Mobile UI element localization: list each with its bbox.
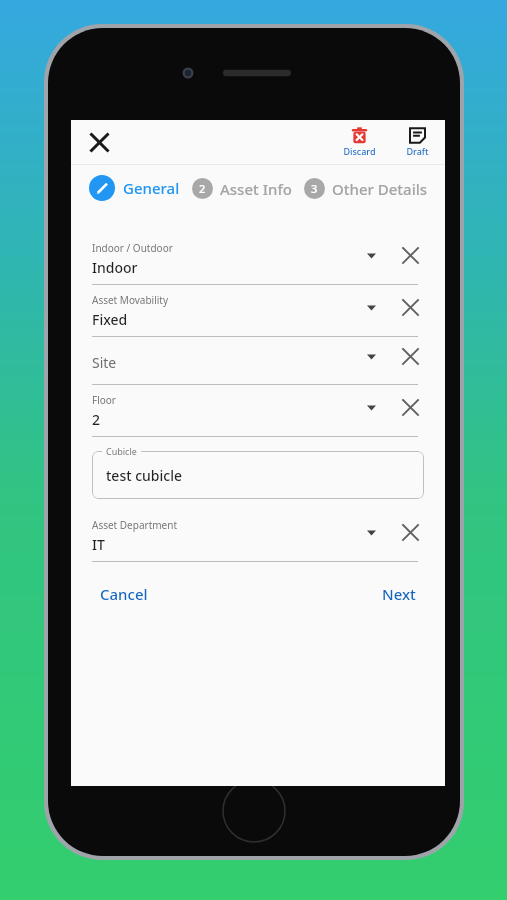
button[interactable]: Discard <box>337 125 381 159</box>
button[interactable]: Asset Department <box>92 510 424 562</box>
button[interactable]: Clear Asset Movability <box>396 293 424 321</box>
staticText: Site <box>92 353 117 372</box>
staticText: test cubicle <box>106 466 183 485</box>
staticText: Asset Info <box>220 179 292 199</box>
button[interactable]: Clear Site <box>396 342 424 370</box>
button[interactable]: Cancel <box>92 578 156 610</box>
staticText: 2 <box>92 410 101 429</box>
button[interactable]: Close <box>81 124 117 160</box>
staticText: Fixed <box>92 310 128 329</box>
staticText: Floor <box>92 393 116 407</box>
button[interactable]: Open Asset Movability dropdown <box>358 294 384 320</box>
button[interactable]: Asset Movability <box>92 285 424 337</box>
button[interactable]: Open Site dropdown <box>358 343 384 369</box>
button[interactable]: Clear Asset Department <box>396 518 424 546</box>
button[interactable]: Floor <box>92 385 424 437</box>
button[interactable]: Clear Indoor / Outdoor <box>396 241 424 269</box>
staticText: Indoor <box>92 258 138 277</box>
staticText: 3 <box>311 181 318 196</box>
button[interactable]: Site <box>92 337 424 385</box>
button[interactable]: General <box>89 175 180 201</box>
staticText: Other Details <box>332 179 428 199</box>
button[interactable]: 3 <box>304 178 428 199</box>
button[interactable]: Open Asset Department dropdown <box>358 519 384 545</box>
staticText: Asset Department <box>92 518 178 532</box>
staticText: IT <box>92 535 105 554</box>
staticText: Cancel <box>100 584 148 604</box>
button[interactable]: test cubicle <box>92 451 424 499</box>
button[interactable]: Clear Floor <box>396 393 424 421</box>
button[interactable]: Indoor / Outdoor <box>92 233 424 285</box>
button[interactable]: Draft <box>395 125 439 159</box>
staticText: General <box>123 178 180 198</box>
staticText: 2 <box>199 181 206 196</box>
button[interactable]: Open Indoor / Outdoor dropdown <box>358 242 384 268</box>
staticText: Draft <box>406 145 429 157</box>
staticText: Discard <box>343 145 376 157</box>
staticText: Cubicle <box>106 445 137 457</box>
button[interactable]: Open Floor dropdown <box>358 394 384 420</box>
staticText: Next <box>382 584 416 604</box>
staticText: Asset Movability <box>92 293 169 307</box>
button[interactable]: Next <box>374 578 424 610</box>
button[interactable]: 2 <box>192 178 292 199</box>
staticText: Indoor / Outdoor <box>92 241 173 255</box>
